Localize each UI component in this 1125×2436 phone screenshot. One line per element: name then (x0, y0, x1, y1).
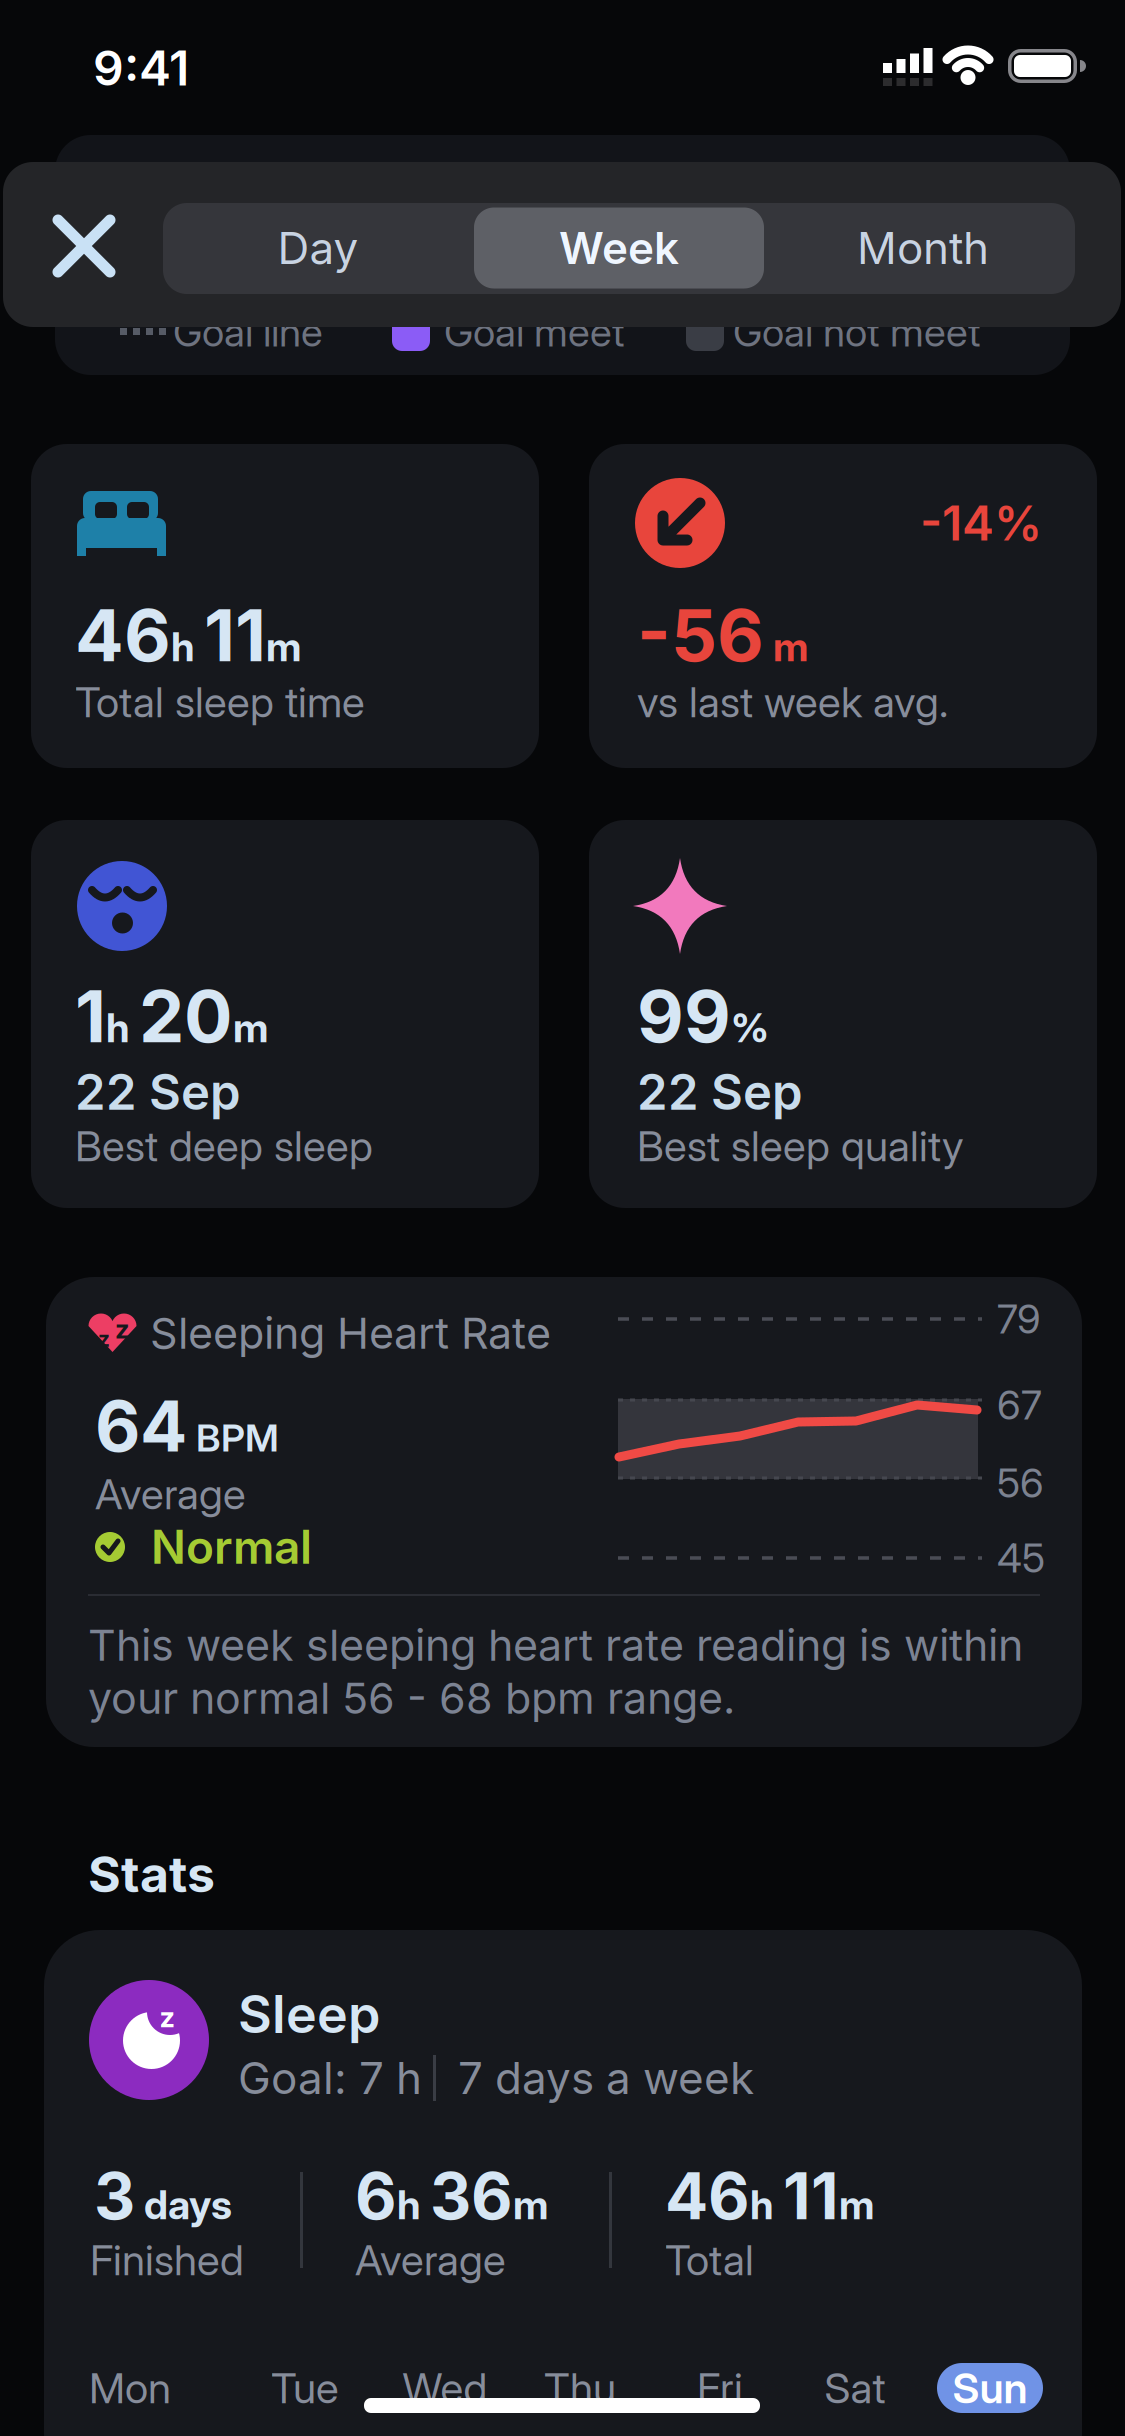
staticText: 46h 11m (75, 592, 301, 677)
button[interactable]: Wed (385, 2363, 505, 2413)
staticText: Average (355, 2235, 506, 2285)
staticText: Best deep sleep (75, 1121, 373, 1171)
staticText: -56 m (637, 592, 808, 677)
staticText: Goal: 7 h (238, 2051, 422, 2105)
staticText: 22 Sep (75, 1062, 241, 1122)
staticText: Average (95, 1469, 246, 1519)
staticText: 7 days a week (458, 2051, 754, 2105)
staticText: Week (559, 221, 679, 275)
staticText: 67 (997, 1381, 1042, 1429)
staticText: 64 BPM (95, 1385, 279, 1467)
button[interactable]: Tue (245, 2363, 365, 2413)
staticText: Thu (544, 2363, 616, 2413)
staticText: Fri (697, 2363, 743, 2413)
button[interactable]: Mon (70, 2363, 190, 2413)
staticText: Stats (88, 1844, 215, 1904)
staticText: Goal not meet (733, 308, 981, 356)
button[interactable]: Thu (520, 2363, 640, 2413)
staticText: Sleeping Heart Rate (150, 1307, 551, 1359)
staticText: Month (857, 221, 989, 275)
staticText: z (159, 2000, 174, 2034)
staticText: 6h 36m (355, 2158, 548, 2234)
button[interactable]: Sun (937, 2363, 1043, 2413)
staticText: 79 (997, 1295, 1041, 1343)
staticText: Normal (151, 1519, 312, 1575)
staticText: This week sleeping heart rate reading is… (88, 1619, 1023, 1671)
staticText: z (115, 1313, 129, 1345)
staticText: your normal 56 - 68 bpm range. (88, 1672, 735, 1724)
staticText: Finished (90, 2235, 244, 2285)
staticText: Wed (402, 2363, 487, 2413)
staticText: Mon (89, 2363, 171, 2413)
staticText: Goal meet (444, 308, 625, 356)
staticText: 46h 11m (665, 2158, 874, 2234)
staticText: Sleep (238, 1982, 380, 2045)
button[interactable]: Week (474, 207, 764, 288)
button[interactable]: Fri (660, 2363, 780, 2413)
staticText: 22 Sep (637, 1062, 803, 1122)
button[interactable]: Month (773, 206, 1073, 289)
staticText: Tue (271, 2363, 339, 2413)
staticText: Sat (824, 2363, 885, 2413)
staticText: Total sleep time (75, 677, 365, 727)
staticText: vs last week avg. (637, 677, 948, 727)
button[interactable]: Day (168, 206, 468, 289)
staticText: 56 (997, 1459, 1044, 1507)
staticText: Day (277, 221, 358, 275)
staticText: 1h 20m (75, 973, 268, 1058)
staticText: 45 (997, 1534, 1045, 1582)
button[interactable]: Sat (795, 2363, 915, 2413)
staticText: 99% (637, 973, 769, 1058)
staticText: 9:41 (93, 39, 189, 97)
button[interactable]: Close (29, 191, 139, 301)
staticText: Sun (952, 2363, 1027, 2413)
staticText: Goal line (173, 308, 323, 356)
staticText: 3 days (94, 2158, 232, 2234)
staticText: z (98, 1326, 110, 1352)
staticText: Best sleep quality (637, 1121, 964, 1171)
staticText: -14% (920, 494, 1042, 552)
staticText: Total (665, 2235, 754, 2285)
